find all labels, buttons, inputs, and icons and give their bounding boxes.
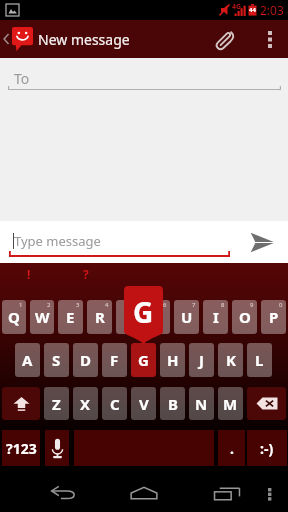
staticText: . (230, 439, 234, 458)
button[interactable]: ! (0, 263, 57, 285)
button[interactable]: C (102, 387, 127, 420)
button[interactable]: More options (251, 20, 288, 58)
staticText: C (110, 394, 120, 414)
button[interactable]: M (218, 387, 243, 420)
staticText: 3 (76, 301, 80, 309)
button[interactable]: ?123 (2, 430, 40, 466)
staticText: :-) (260, 439, 274, 458)
button[interactable]: Z (44, 387, 69, 420)
staticText: K (226, 350, 236, 370)
button[interactable]: V (131, 387, 156, 420)
staticText: A (22, 350, 33, 370)
button[interactable]: H (160, 343, 185, 377)
staticText: D (80, 350, 91, 370)
button[interactable]: J (189, 343, 214, 377)
button[interactable]: F (102, 343, 127, 377)
staticText: 9 (250, 301, 254, 309)
button[interactable]: To (0, 58, 288, 100)
button[interactable]: Menu (260, 466, 288, 512)
staticText: U (181, 307, 193, 327)
button[interactable]: Send (236, 221, 288, 263)
button[interactable]: Y (145, 300, 170, 334)
staticText: To (14, 69, 30, 88)
staticText: L (255, 350, 264, 370)
staticText: 5 (134, 301, 138, 309)
staticText: Type message (14, 232, 101, 250)
staticText: F (110, 350, 119, 370)
button[interactable]: D (73, 343, 98, 377)
button[interactable]: L (247, 343, 272, 377)
staticText: P (269, 307, 279, 327)
staticText: ? (83, 266, 89, 282)
button[interactable]: Backspace (247, 387, 286, 420)
button[interactable]: Shift (2, 387, 40, 420)
button[interactable]: U (174, 300, 199, 334)
staticText: ?123 (6, 439, 37, 458)
button[interactable]: :-) (247, 430, 287, 466)
staticText: I (213, 307, 219, 327)
button[interactable]: ? (57, 263, 114, 285)
staticText: 0 (279, 301, 283, 309)
button[interactable]: W (30, 300, 54, 334)
button[interactable]: R (87, 300, 112, 334)
staticText: Z (52, 394, 61, 414)
staticText: E (66, 307, 75, 327)
staticText: 1 (19, 301, 23, 309)
button[interactable]: Recent apps (202, 466, 252, 512)
staticText: 4 (105, 301, 109, 309)
staticText: 2 (47, 301, 51, 309)
button[interactable]: Attach (200, 20, 251, 58)
staticText: X (80, 394, 91, 414)
button[interactable]: Back (38, 466, 88, 512)
button[interactable]: E (58, 300, 83, 334)
button[interactable]: New message (11, 20, 130, 58)
staticText: 8 (221, 301, 225, 309)
staticText: G (133, 293, 154, 331)
button[interactable]: I (203, 300, 228, 334)
staticText: O (239, 307, 251, 327)
staticText: R (95, 307, 105, 327)
staticText: Q (8, 307, 20, 327)
staticText: H (167, 350, 179, 370)
staticText: M (223, 394, 238, 414)
staticText: N (195, 394, 208, 414)
staticText: 6 (163, 301, 167, 309)
button[interactable]: Navigate up (0, 20, 11, 58)
staticText: 2:03 (260, 2, 284, 18)
staticText: 7 (192, 301, 196, 309)
button[interactable]: G (131, 343, 156, 377)
button[interactable]: Type message (4, 221, 236, 263)
button[interactable]: N (189, 387, 214, 420)
staticText: ! (27, 266, 31, 282)
button[interactable]: T (116, 300, 141, 334)
button[interactable]: X (73, 387, 98, 420)
button[interactable]: A (15, 343, 40, 377)
staticText: New message (38, 30, 130, 49)
button[interactable]: Home (118, 466, 170, 512)
staticText: G (138, 350, 149, 370)
button[interactable]: P (261, 300, 286, 334)
button[interactable]: B (160, 387, 185, 420)
staticText: V (139, 394, 149, 414)
staticText: J (199, 350, 204, 370)
button[interactable]: . (218, 430, 245, 466)
staticText: B (168, 394, 178, 414)
button[interactable]: Voice input (45, 430, 69, 466)
staticText: S (52, 350, 61, 370)
button[interactable]: Q (2, 300, 26, 334)
staticText: 4G (232, 2, 242, 12)
button[interactable]: S (44, 343, 69, 377)
staticText: W (35, 307, 50, 327)
button[interactable]: O (232, 300, 257, 334)
button[interactable]: K (218, 343, 243, 377)
staticText: 44 (249, 6, 256, 14)
